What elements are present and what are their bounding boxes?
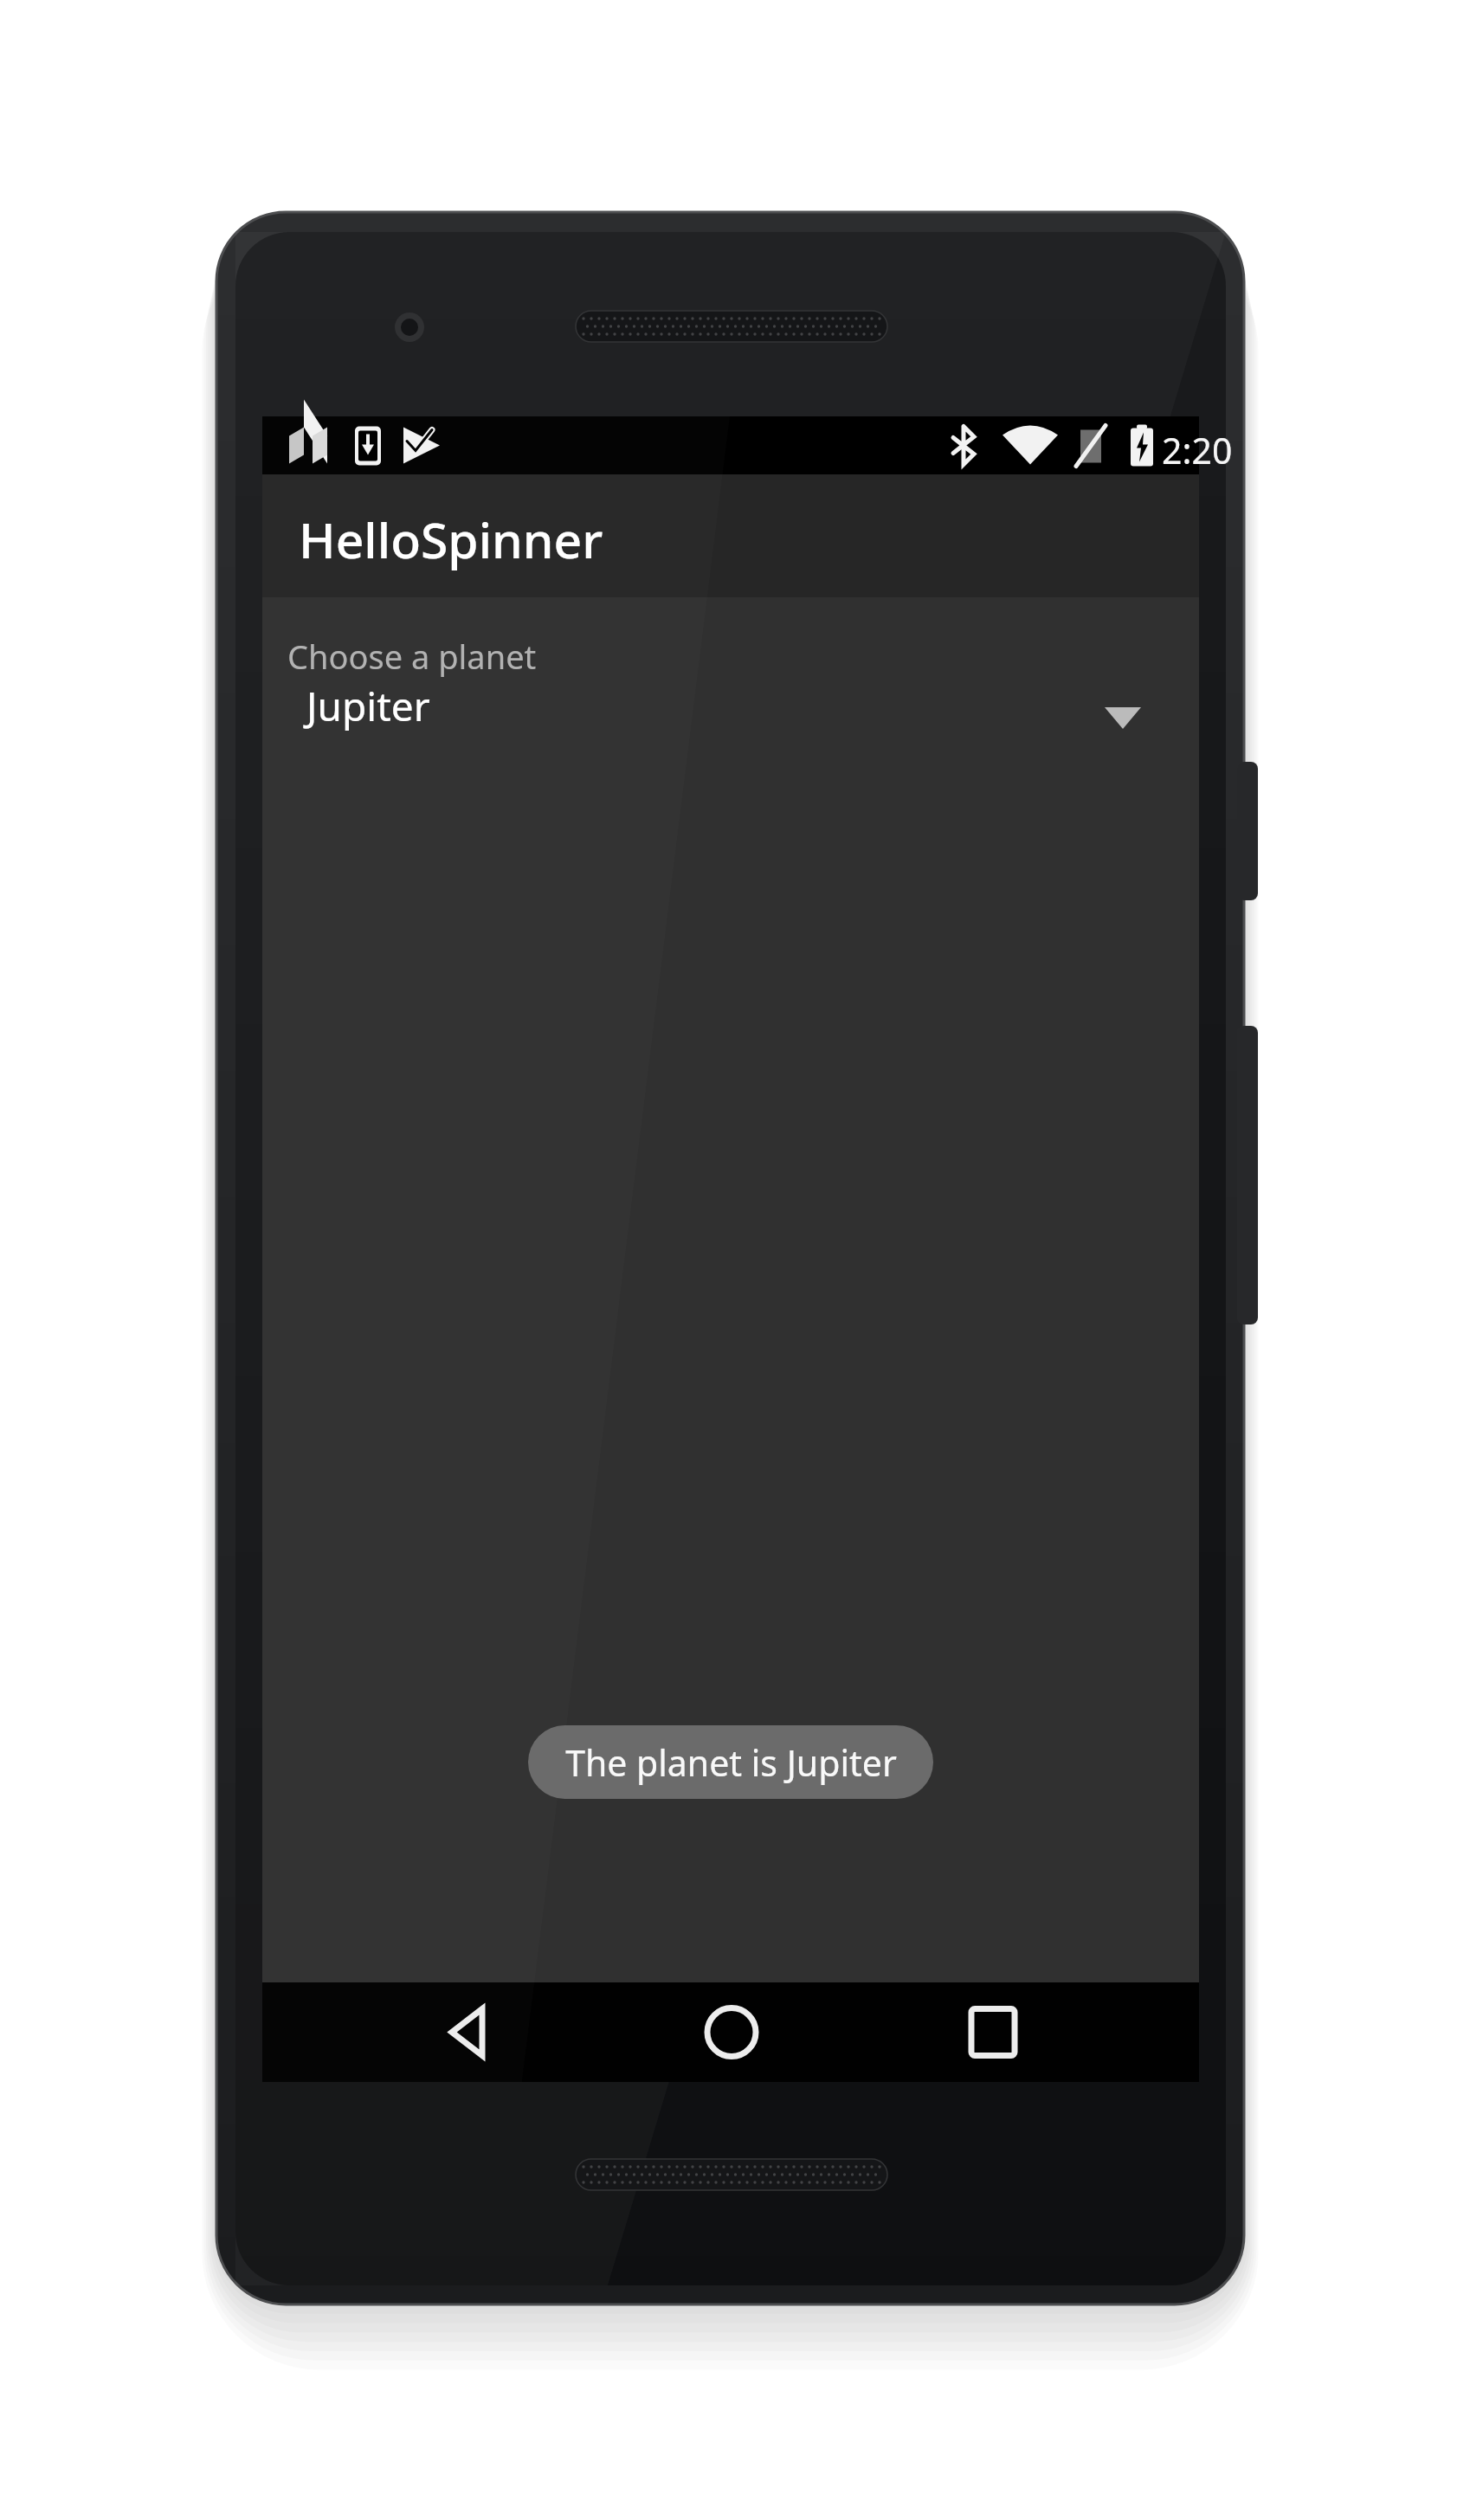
staticText: Jupiter: [306, 679, 430, 733]
button[interactable]: HelloSpinner: [299, 506, 603, 573]
staticText: The planet is Jupiter: [565, 1738, 897, 1787]
button[interactable]: Back: [381, 1982, 554, 2082]
staticText: HelloSpinner: [299, 506, 603, 573]
staticText: 2:20: [1162, 426, 1233, 474]
staticText: Choose a planet: [287, 634, 537, 679]
button[interactable]: Home: [645, 1982, 818, 2082]
button[interactable]: Recent apps: [906, 1982, 1080, 2082]
button[interactable]: Choose a planet: [280, 634, 1182, 762]
